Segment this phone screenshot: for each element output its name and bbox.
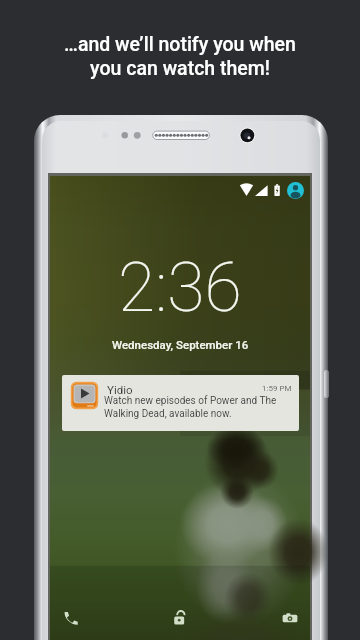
button[interactable]: User xyxy=(287,182,304,199)
staticText: Yidio xyxy=(107,383,133,396)
staticText: 2:36 xyxy=(118,248,242,328)
staticText: 1:59 PM xyxy=(262,384,292,393)
button[interactable]: Unlock xyxy=(165,603,195,633)
button[interactable]: Camera xyxy=(275,603,305,633)
staticText: …and we’ll notify you when you can watch… xyxy=(0,33,360,79)
button[interactable]: Phone xyxy=(56,603,86,633)
staticText: Wednesday, September 16 xyxy=(112,338,249,351)
button[interactable]: Yidio xyxy=(62,375,299,431)
staticText: Watch new episodes of Power and The Walk… xyxy=(104,395,277,420)
